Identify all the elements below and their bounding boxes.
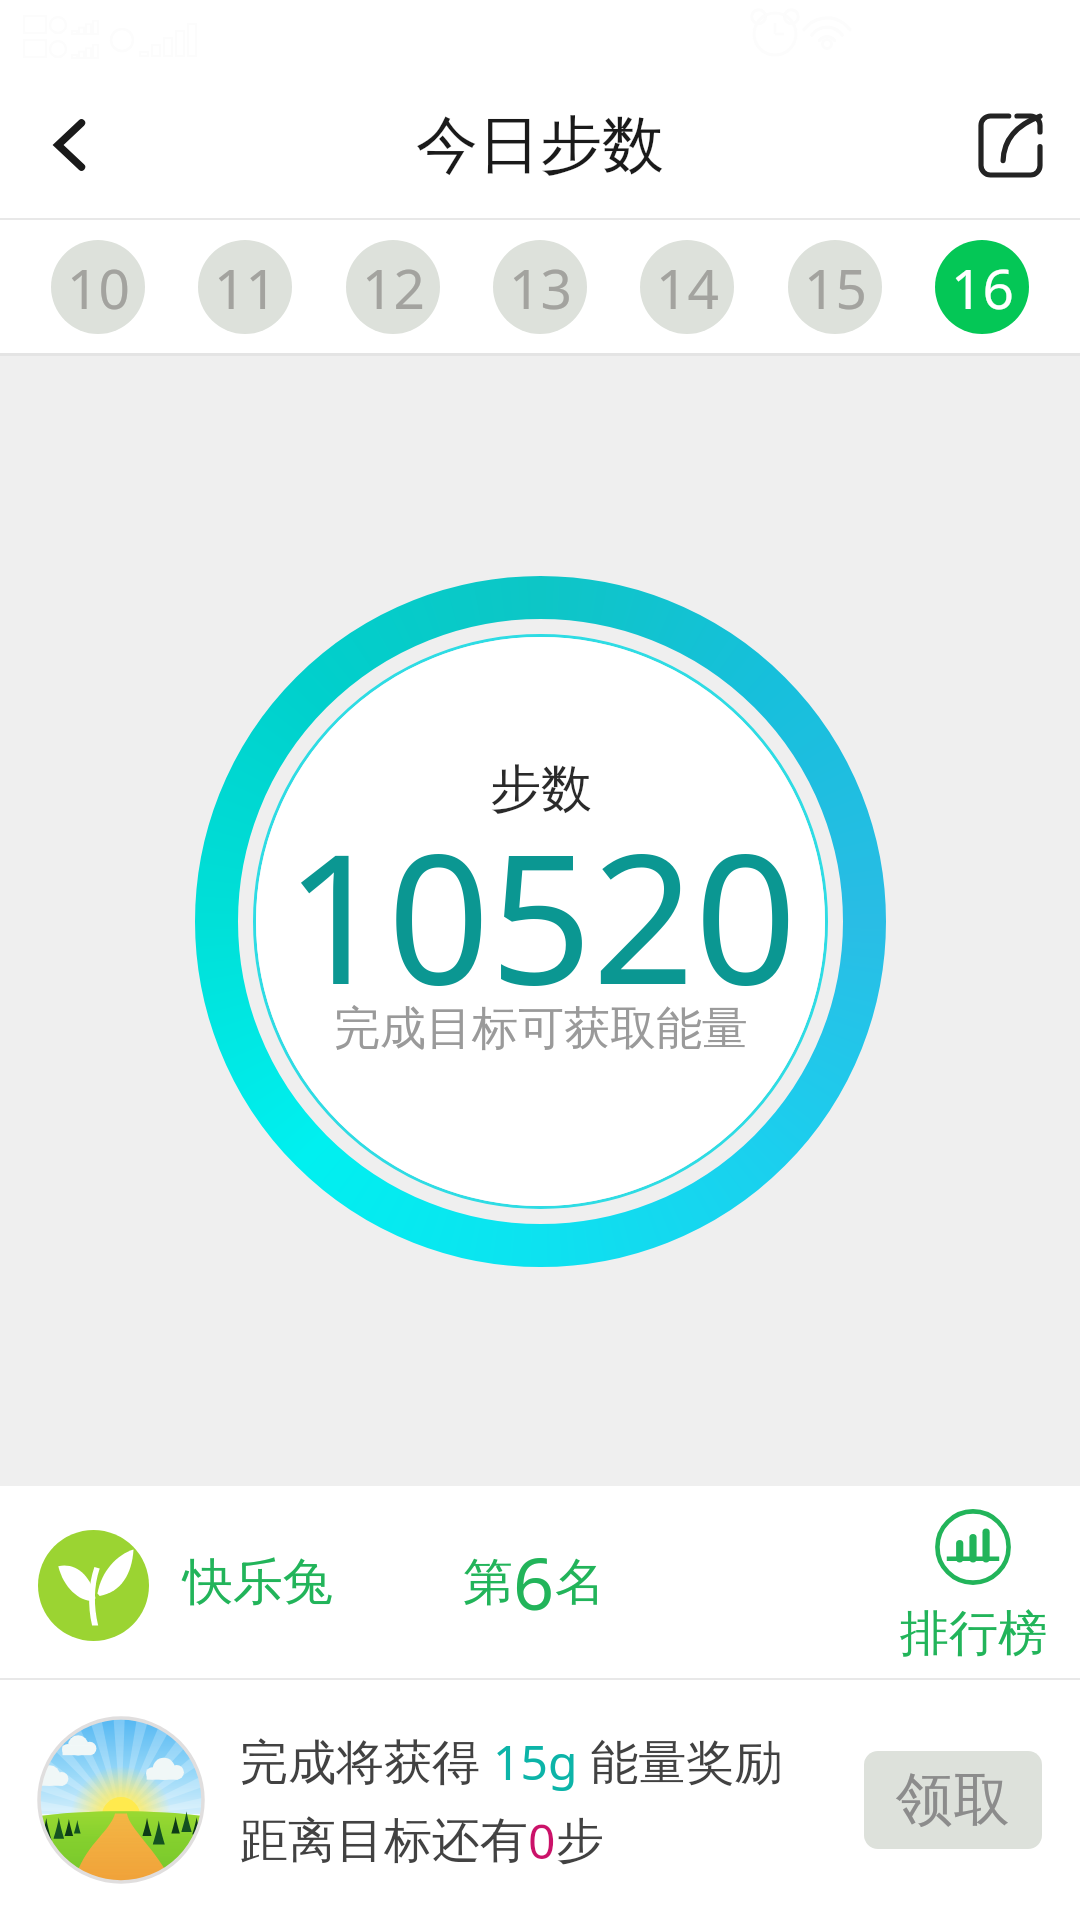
- button[interactable]: Back: [24, 99, 116, 191]
- staticText: 15g: [493, 1729, 578, 1794]
- button[interactable]: Share: [962, 97, 1058, 193]
- button[interactable]: 领取: [864, 1751, 1042, 1849]
- staticText: 第: [463, 1551, 513, 1614]
- staticText: 15: [804, 250, 867, 325]
- staticText: 13: [509, 250, 572, 325]
- button[interactable]: 10: [51, 240, 145, 334]
- button[interactable]: 15: [788, 240, 882, 334]
- button[interactable]: 16: [935, 240, 1029, 334]
- staticText: 今日步数: [416, 106, 664, 184]
- button[interactable]: 12: [346, 240, 440, 334]
- staticText: 10520: [285, 793, 797, 1037]
- staticText: 步: [556, 1811, 604, 1871]
- button[interactable]: 14: [640, 240, 734, 334]
- staticText: 12: [362, 250, 425, 325]
- staticText: 完成将获得: [240, 1728, 493, 1794]
- staticText: 6: [513, 1533, 555, 1631]
- staticText: 步数: [490, 757, 592, 821]
- staticText: 领取: [896, 1764, 1010, 1836]
- staticText: 快乐兔: [183, 1551, 333, 1614]
- staticText: 10: [67, 250, 130, 325]
- staticText: 能量奖励: [578, 1728, 783, 1794]
- staticText: 11: [214, 250, 277, 325]
- staticText: 14: [656, 250, 719, 325]
- staticText: 16: [951, 250, 1014, 325]
- staticText: 排行榜: [900, 1603, 1047, 1665]
- staticText: 名: [555, 1551, 605, 1614]
- button[interactable]: 13: [493, 240, 587, 334]
- staticText: 距离目标还有: [240, 1811, 528, 1871]
- button[interactable]: 11: [198, 240, 292, 334]
- button[interactable]: [38, 1530, 149, 1641]
- staticText: 0: [528, 1808, 556, 1873]
- staticText: 完成目标可获取能量: [334, 1000, 748, 1058]
- button[interactable]: 排行榜: [888, 1509, 1058, 1665]
